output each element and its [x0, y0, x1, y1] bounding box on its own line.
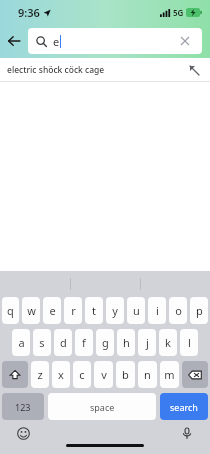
button[interactable]: Backspace: [182, 361, 208, 388]
button[interactable]: search: [160, 393, 208, 420]
button[interactable]: u: [127, 297, 145, 324]
other: Insert suggestion: [186, 62, 202, 78]
staticText: search: [170, 401, 198, 413]
button[interactable]: i: [148, 297, 166, 324]
button[interactable]: a: [12, 329, 30, 356]
staticText: r: [71, 303, 76, 318]
button[interactable]: m: [160, 361, 179, 388]
staticText: o: [175, 303, 182, 318]
button[interactable]: f: [75, 329, 93, 356]
staticText: v: [101, 367, 107, 382]
staticText: e: [49, 303, 56, 318]
staticText: a: [18, 335, 25, 350]
button[interactable]: w: [22, 297, 40, 324]
button[interactable]: t: [85, 297, 103, 324]
staticText: u: [133, 303, 140, 318]
staticText: 123: [15, 401, 31, 413]
staticText: k: [165, 335, 171, 350]
button[interactable]: k: [159, 329, 177, 356]
staticText: space: [90, 401, 115, 413]
button[interactable]: space: [48, 393, 156, 420]
staticText: 5G: [173, 7, 184, 18]
staticText: e: [53, 34, 60, 49]
staticText: z: [37, 367, 43, 382]
button[interactable]: d: [54, 329, 72, 356]
button[interactable]: g: [96, 329, 114, 356]
staticText: d: [60, 335, 67, 350]
staticText: h: [123, 335, 130, 350]
button[interactable]: l: [180, 329, 198, 356]
staticText: m: [164, 367, 175, 382]
button[interactable]: Emoji: [13, 423, 33, 443]
staticText: t: [92, 303, 96, 318]
button[interactable]: Clear: [176, 32, 194, 50]
staticText: electric shöck cöck cage: [7, 64, 105, 76]
button[interactable]: e: [28, 28, 202, 54]
button[interactable]: y: [106, 297, 124, 324]
staticText: b: [122, 367, 129, 382]
button[interactable]: p: [190, 297, 208, 324]
button[interactable]: v: [94, 361, 113, 388]
button[interactable]: j: [138, 329, 156, 356]
button[interactable]: e: [43, 297, 61, 324]
button[interactable]: electric shöck cöck cage: [0, 58, 210, 82]
button[interactable]: q: [2, 297, 19, 324]
button[interactable]: b: [116, 361, 135, 388]
staticText: s: [39, 335, 45, 350]
button[interactable]: 123: [2, 393, 44, 420]
button[interactable]: r: [64, 297, 82, 324]
button[interactable]: s: [33, 329, 51, 356]
staticText: x: [58, 367, 64, 382]
staticText: g: [102, 335, 109, 350]
staticText: j: [146, 335, 149, 350]
staticText: c: [79, 367, 85, 382]
button[interactable]: n: [138, 361, 157, 388]
staticText: w: [27, 303, 36, 318]
staticText: l: [188, 335, 191, 350]
button[interactable]: o: [169, 297, 187, 324]
staticText: f: [82, 335, 86, 350]
staticText: i: [156, 303, 159, 318]
staticText: 9:36: [18, 5, 40, 20]
button[interactable]: h: [117, 329, 135, 356]
staticText: y: [112, 303, 118, 318]
button[interactable]: z: [31, 361, 49, 388]
button[interactable]: c: [73, 361, 91, 388]
button[interactable]: x: [52, 361, 70, 388]
button[interactable]: Back: [0, 27, 28, 55]
button[interactable]: Voice input: [177, 423, 197, 443]
staticText: q: [7, 303, 14, 318]
button[interactable]: Shift: [2, 361, 28, 388]
staticText: n: [144, 367, 151, 382]
staticText: p: [196, 303, 203, 318]
